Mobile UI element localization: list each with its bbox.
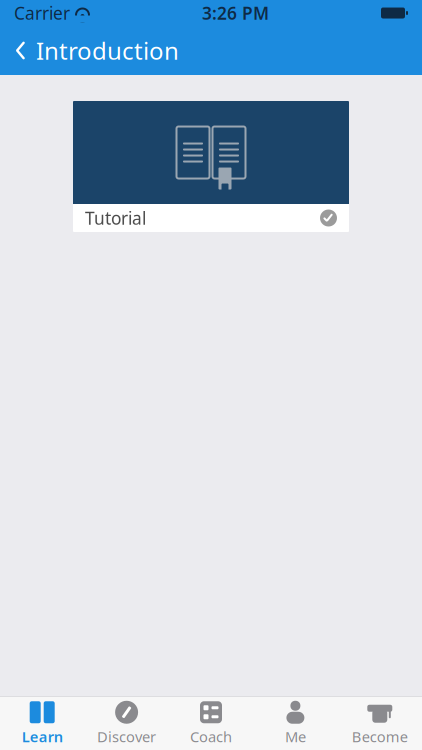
- staticText: Learn: [22, 727, 63, 746]
- button[interactable]: Tutorial: [73, 101, 349, 232]
- staticText: Carrier: [14, 1, 70, 24]
- button[interactable]: Coach: [169, 695, 253, 750]
- button[interactable]: Learn: [0, 695, 84, 750]
- button[interactable]: Introduction: [0, 25, 179, 76]
- staticText: Discover: [97, 727, 156, 746]
- button[interactable]: Become: [338, 695, 422, 750]
- staticText: Introduction: [36, 35, 179, 66]
- staticText: Tutorial: [85, 206, 146, 229]
- staticText: Become: [352, 727, 408, 746]
- staticText: 3:26 PM: [202, 1, 269, 24]
- button[interactable]: Me: [253, 695, 338, 750]
- staticText: Me: [285, 727, 306, 746]
- button[interactable]: Discover: [84, 695, 169, 750]
- staticText: Coach: [190, 727, 232, 746]
